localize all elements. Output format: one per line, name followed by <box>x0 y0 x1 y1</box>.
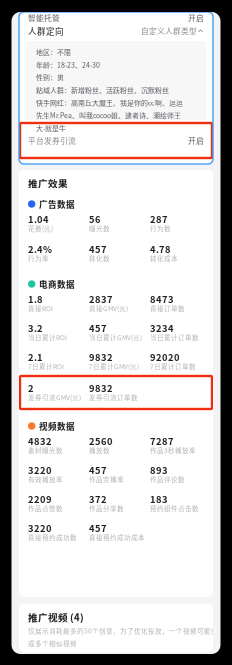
button[interactable]: 人群定向 <box>19 24 213 38</box>
staticText: 7287 <box>150 434 174 448</box>
staticText: 7日累计订单数 <box>150 362 196 371</box>
staticText: 地区：不限 <box>36 47 71 57</box>
staticText: 直接订单数 <box>150 304 185 313</box>
staticText: 播放数 <box>89 446 110 455</box>
staticText: 2.4% <box>28 242 52 256</box>
staticText: 有效播放率 <box>28 475 63 484</box>
staticText: 粘域人群：新增粉丝、活跃粉丝、沉默粉丝 <box>36 85 169 95</box>
staticText: 年龄：18-23、24-30 <box>36 60 100 70</box>
staticText: 9832 <box>89 350 113 364</box>
staticText: 作品3秒播放率 <box>150 446 196 455</box>
staticText: 平台发券引流 <box>28 135 76 146</box>
staticText: 457 <box>89 321 107 335</box>
staticText: 2560 <box>89 434 113 448</box>
staticText: 当日累计ROI <box>28 333 67 342</box>
staticText: 4.78 <box>150 242 171 256</box>
staticText: 开启 <box>188 12 204 24</box>
staticText: 56 <box>89 212 101 226</box>
staticText: 9832 <box>89 381 113 395</box>
staticText: 1.04 <box>28 212 49 226</box>
button[interactable]: 智能托管 <box>19 12 213 24</box>
staticText: 457 <box>89 521 107 535</box>
staticText: 2.1 <box>28 350 43 364</box>
staticText: 大-就是牛 <box>36 123 66 133</box>
staticText: 曝光数 <box>89 224 110 233</box>
staticText: 当日累计订单数 <box>150 333 199 342</box>
staticText: 直接GMV(元) <box>89 304 128 313</box>
staticText: 457 <box>89 242 107 256</box>
staticText: 3220 <box>28 521 52 535</box>
staticText: 作品点赞数 <box>28 504 63 513</box>
staticText: 成多个相似视频 <box>28 639 77 648</box>
staticText: 性别：男 <box>36 72 64 82</box>
staticText: 8473 <box>150 292 174 306</box>
staticText: 作品完播率 <box>89 475 124 484</box>
button[interactable]: 平台发券引流 <box>20 123 212 158</box>
staticText: 4832 <box>28 434 52 448</box>
staticText: 7日累计ROI <box>28 362 64 371</box>
staticText: 行为数 <box>150 224 171 233</box>
staticText: 发券引流GMV(元) <box>28 393 81 402</box>
staticText: 372 <box>89 492 107 506</box>
staticText: 推广视频 (4) <box>28 610 84 624</box>
staticText: 直接预约成功数 <box>28 533 77 542</box>
staticText: 2209 <box>28 492 52 506</box>
staticText: 3220 <box>28 463 52 477</box>
staticText: 287 <box>150 212 168 226</box>
staticText: 电商数据 <box>39 278 75 290</box>
staticText: 作品评论数 <box>150 475 185 484</box>
staticText: 快手网红：高南丘大魔王、我是你的cc啊、逗逗 <box>36 98 183 108</box>
staticText: 广告数据 <box>39 198 75 210</box>
staticText: 发券引流订单数 <box>89 393 138 402</box>
staticText: 推广效果 <box>28 176 68 190</box>
staticText: 转化成本 <box>150 254 178 263</box>
staticText: 183 <box>150 492 168 506</box>
staticText: 仅展示消耗最多的50个创意，为了优化投放，一个视频可能会生 <box>28 626 225 635</box>
staticText: 行为率 <box>28 254 49 263</box>
staticText: 人群定向 <box>28 25 64 37</box>
staticText: 1.8 <box>28 292 43 306</box>
staticText: 893 <box>150 463 168 477</box>
staticText: 3.2 <box>28 321 43 335</box>
staticText: 直接预约成功成本 <box>89 533 145 542</box>
staticText: 7日累计GMV(元) <box>89 362 139 371</box>
staticText: 先生Mr.Pea、叫我cocoo姐、逮者诗、潮绘师王 <box>36 110 181 120</box>
staticText: 当日累计GMV(元) <box>89 333 142 342</box>
staticText: 直接ROI <box>28 304 53 313</box>
staticText: 转化数 <box>89 254 110 263</box>
staticText: 花费(元) <box>28 224 53 233</box>
staticText: 开启 <box>188 135 204 146</box>
staticText: 自定义人群类型 <box>141 25 197 37</box>
staticText: 作品分享数 <box>89 504 124 513</box>
staticText: 视频数据 <box>39 420 75 432</box>
staticText: 2 <box>28 381 34 395</box>
staticText: 457 <box>89 463 107 477</box>
staticText: 智能托管 <box>28 12 60 24</box>
staticText: 92020 <box>150 350 180 364</box>
staticText: 2837 <box>89 292 113 306</box>
staticText: 素材曝光数 <box>28 446 63 455</box>
staticText: 3234 <box>150 321 174 335</box>
staticText: 预约组件点击数 <box>150 504 199 513</box>
